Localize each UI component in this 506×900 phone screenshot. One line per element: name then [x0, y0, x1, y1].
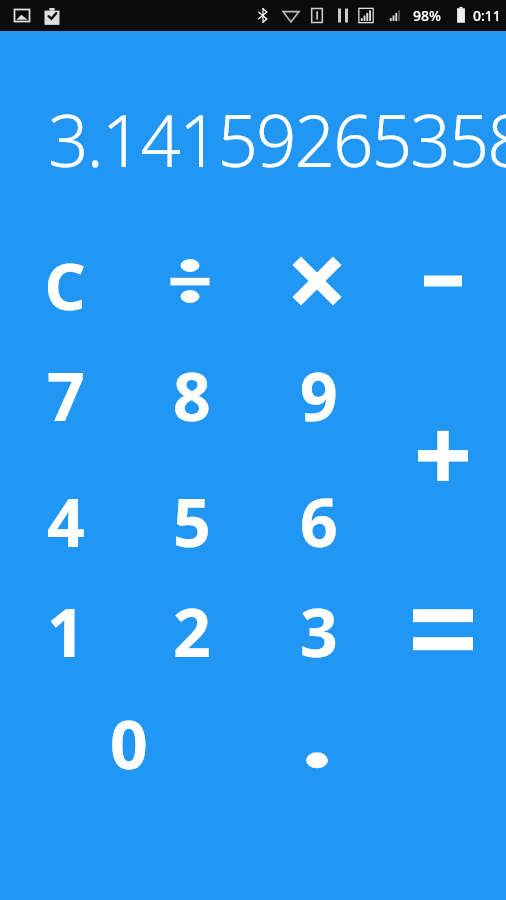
staticText: 4: [47, 476, 85, 558]
button[interactable]: 4: [26, 476, 106, 558]
button[interactable]: Equals: [401, 586, 485, 754]
staticText: 9: [300, 350, 338, 432]
staticText: 5: [173, 476, 211, 558]
button[interactable]: 5: [152, 476, 232, 558]
staticText: 6: [300, 476, 338, 558]
button[interactable]: 2: [152, 586, 232, 668]
button[interactable]: Multiply: [275, 242, 359, 320]
staticText: 98%: [413, 6, 441, 25]
button[interactable]: 1: [26, 586, 106, 668]
staticText: 8: [173, 350, 211, 432]
staticText: 1: [47, 586, 85, 668]
staticText: 3.1415926535897: [48, 91, 506, 188]
staticText: 0: [110, 698, 148, 780]
button[interactable]: Decimal point: [275, 698, 359, 780]
button[interactable]: 8: [152, 350, 232, 432]
button[interactable]: Plus: [401, 350, 485, 518]
button[interactable]: Divide: [148, 242, 232, 320]
staticText: C: [44, 242, 86, 320]
button[interactable]: 7: [26, 350, 106, 432]
button[interactable]: Minus: [401, 242, 485, 320]
button[interactable]: C: [20, 242, 110, 320]
button[interactable]: 3: [279, 586, 359, 668]
staticText: 2: [173, 586, 211, 668]
button[interactable]: 0: [89, 698, 169, 780]
staticText: 3: [300, 586, 338, 668]
button[interactable]: 9: [279, 350, 359, 432]
staticText: 0:11: [473, 6, 501, 25]
button[interactable]: 6: [279, 476, 359, 558]
staticText: 7: [47, 350, 85, 432]
